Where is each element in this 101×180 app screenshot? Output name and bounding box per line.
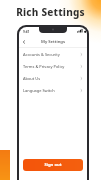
staticText: 9:41 xyxy=(23,30,30,34)
button[interactable]: Language Switch xyxy=(19,84,87,96)
staticText: About Us xyxy=(23,76,41,81)
button[interactable]: Back xyxy=(19,37,29,47)
button[interactable]: Accounts & Security xyxy=(19,48,87,60)
staticText: Language Switch xyxy=(23,88,55,93)
staticText: Rich Settings xyxy=(16,5,85,19)
button[interactable]: Terms & Privacy Policy xyxy=(19,60,87,72)
staticText: Accounts & Security xyxy=(23,52,60,57)
staticText: Sign out xyxy=(44,162,62,168)
staticText: My Settings xyxy=(41,39,65,45)
button[interactable]: About Us xyxy=(19,72,87,84)
staticText: Terms & Privacy Policy xyxy=(23,64,65,69)
button[interactable]: Sign out xyxy=(23,159,83,171)
